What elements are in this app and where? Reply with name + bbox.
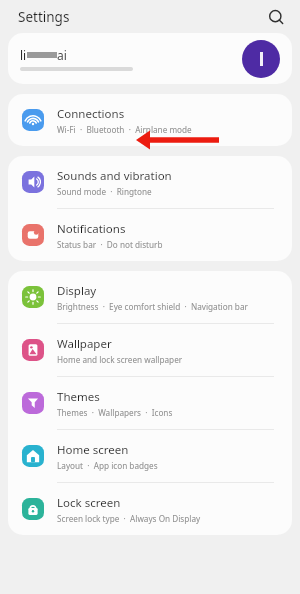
- button[interactable]: Themes: [8, 377, 292, 429]
- button[interactable]: Display: [8, 271, 292, 323]
- staticText: li: [20, 47, 27, 63]
- staticText: Sounds and vibration: [57, 168, 172, 184]
- staticText: Themes · Wallpapers · Icons: [57, 407, 173, 418]
- button[interactable]: Search: [262, 3, 290, 31]
- button[interactable]: Lock screen: [8, 483, 292, 535]
- button[interactable]: li: [8, 33, 292, 84]
- staticText: Lock screen: [57, 495, 121, 511]
- button[interactable]: Wallpaper: [8, 324, 292, 376]
- button[interactable]: [242, 40, 280, 78]
- staticText: Wallpaper: [57, 336, 112, 352]
- staticText: Notifications: [57, 221, 126, 237]
- staticText: Home screen: [57, 442, 129, 458]
- staticText: Connections: [57, 106, 125, 122]
- staticText: Themes: [57, 389, 100, 405]
- staticText: Display: [57, 283, 97, 299]
- staticText: Status bar · Do not disturb: [57, 239, 163, 250]
- button[interactable]: Sounds and vibration: [8, 156, 292, 208]
- staticText: Screen lock type · Always On Display: [57, 513, 201, 524]
- staticText: ai: [57, 47, 67, 63]
- staticText: Layout · App icon badges: [57, 460, 158, 471]
- button[interactable]: Home screen: [8, 430, 292, 482]
- staticText: Settings: [18, 8, 70, 26]
- staticText: Brightness · Eye comfort shield · Naviga…: [57, 301, 248, 312]
- staticText: Sound mode · Ringtone: [57, 186, 152, 197]
- button[interactable]: Connections: [8, 94, 292, 146]
- staticText: Home and lock screen wallpaper: [57, 354, 183, 365]
- staticText: Wi-Fi · Bluetooth · Airplane mode: [57, 124, 192, 135]
- button[interactable]: Notifications: [8, 209, 292, 261]
